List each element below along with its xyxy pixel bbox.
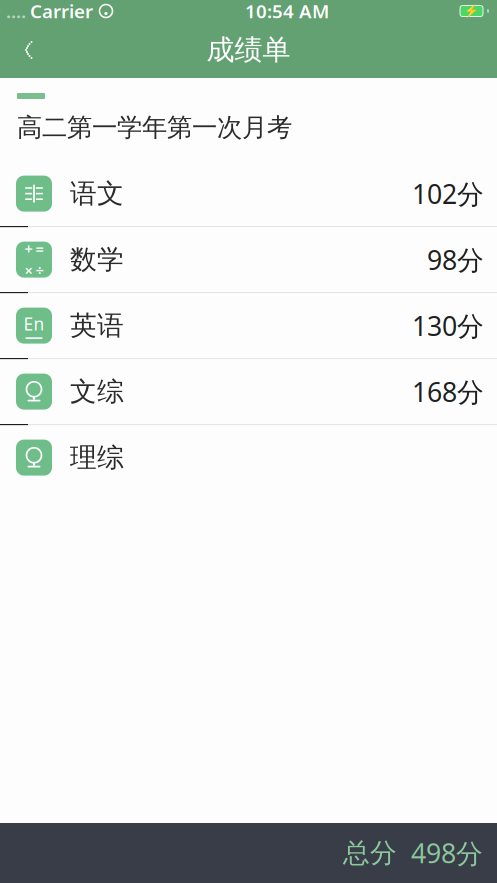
staticText: 98分 (427, 242, 484, 277)
staticText: ⚡ (464, 4, 479, 18)
button[interactable]: 文综 (0, 359, 497, 425)
staticText: 498分 (411, 835, 483, 871)
staticText: 130分 (412, 308, 484, 343)
staticText: 102分 (412, 176, 484, 211)
staticText: ÷ (35, 261, 43, 280)
button[interactable]: Back (0, 24, 52, 76)
button[interactable]: 语文 (0, 161, 497, 227)
staticText: × (24, 261, 32, 280)
staticText: 高二第一学年第一次月考 (17, 112, 292, 143)
button[interactable]: 理综 (0, 425, 497, 490)
staticText: 文综 (70, 375, 124, 408)
staticText: Carrier (30, 0, 93, 23)
staticText: 10:54 AM (245, 0, 329, 23)
button[interactable]: En (0, 293, 497, 359)
staticText: 总分 (343, 837, 397, 869)
staticText: 语文 (70, 177, 124, 210)
staticText: = (35, 239, 43, 259)
staticText: + (24, 239, 32, 259)
staticText: 英语 (70, 309, 124, 342)
button[interactable]: + (0, 227, 497, 293)
staticText: En (23, 312, 44, 335)
staticText: 成绩单 (206, 33, 290, 67)
staticText: 理综 (70, 441, 124, 474)
staticText: 数学 (70, 243, 124, 276)
staticText: .... (6, 0, 26, 23)
staticText: 168分 (412, 374, 484, 409)
